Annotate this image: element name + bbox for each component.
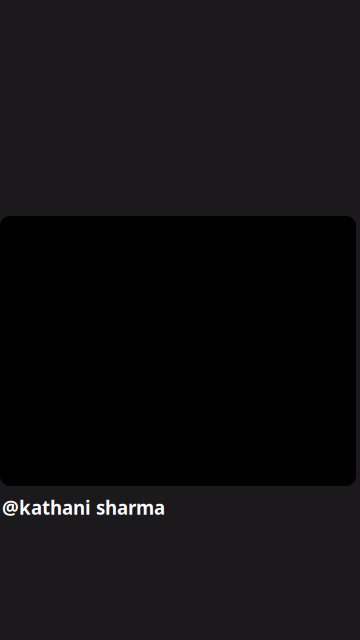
button[interactable]: @kathani sharma: [0, 495, 165, 520]
staticText: @kathani sharma: [2, 495, 165, 520]
